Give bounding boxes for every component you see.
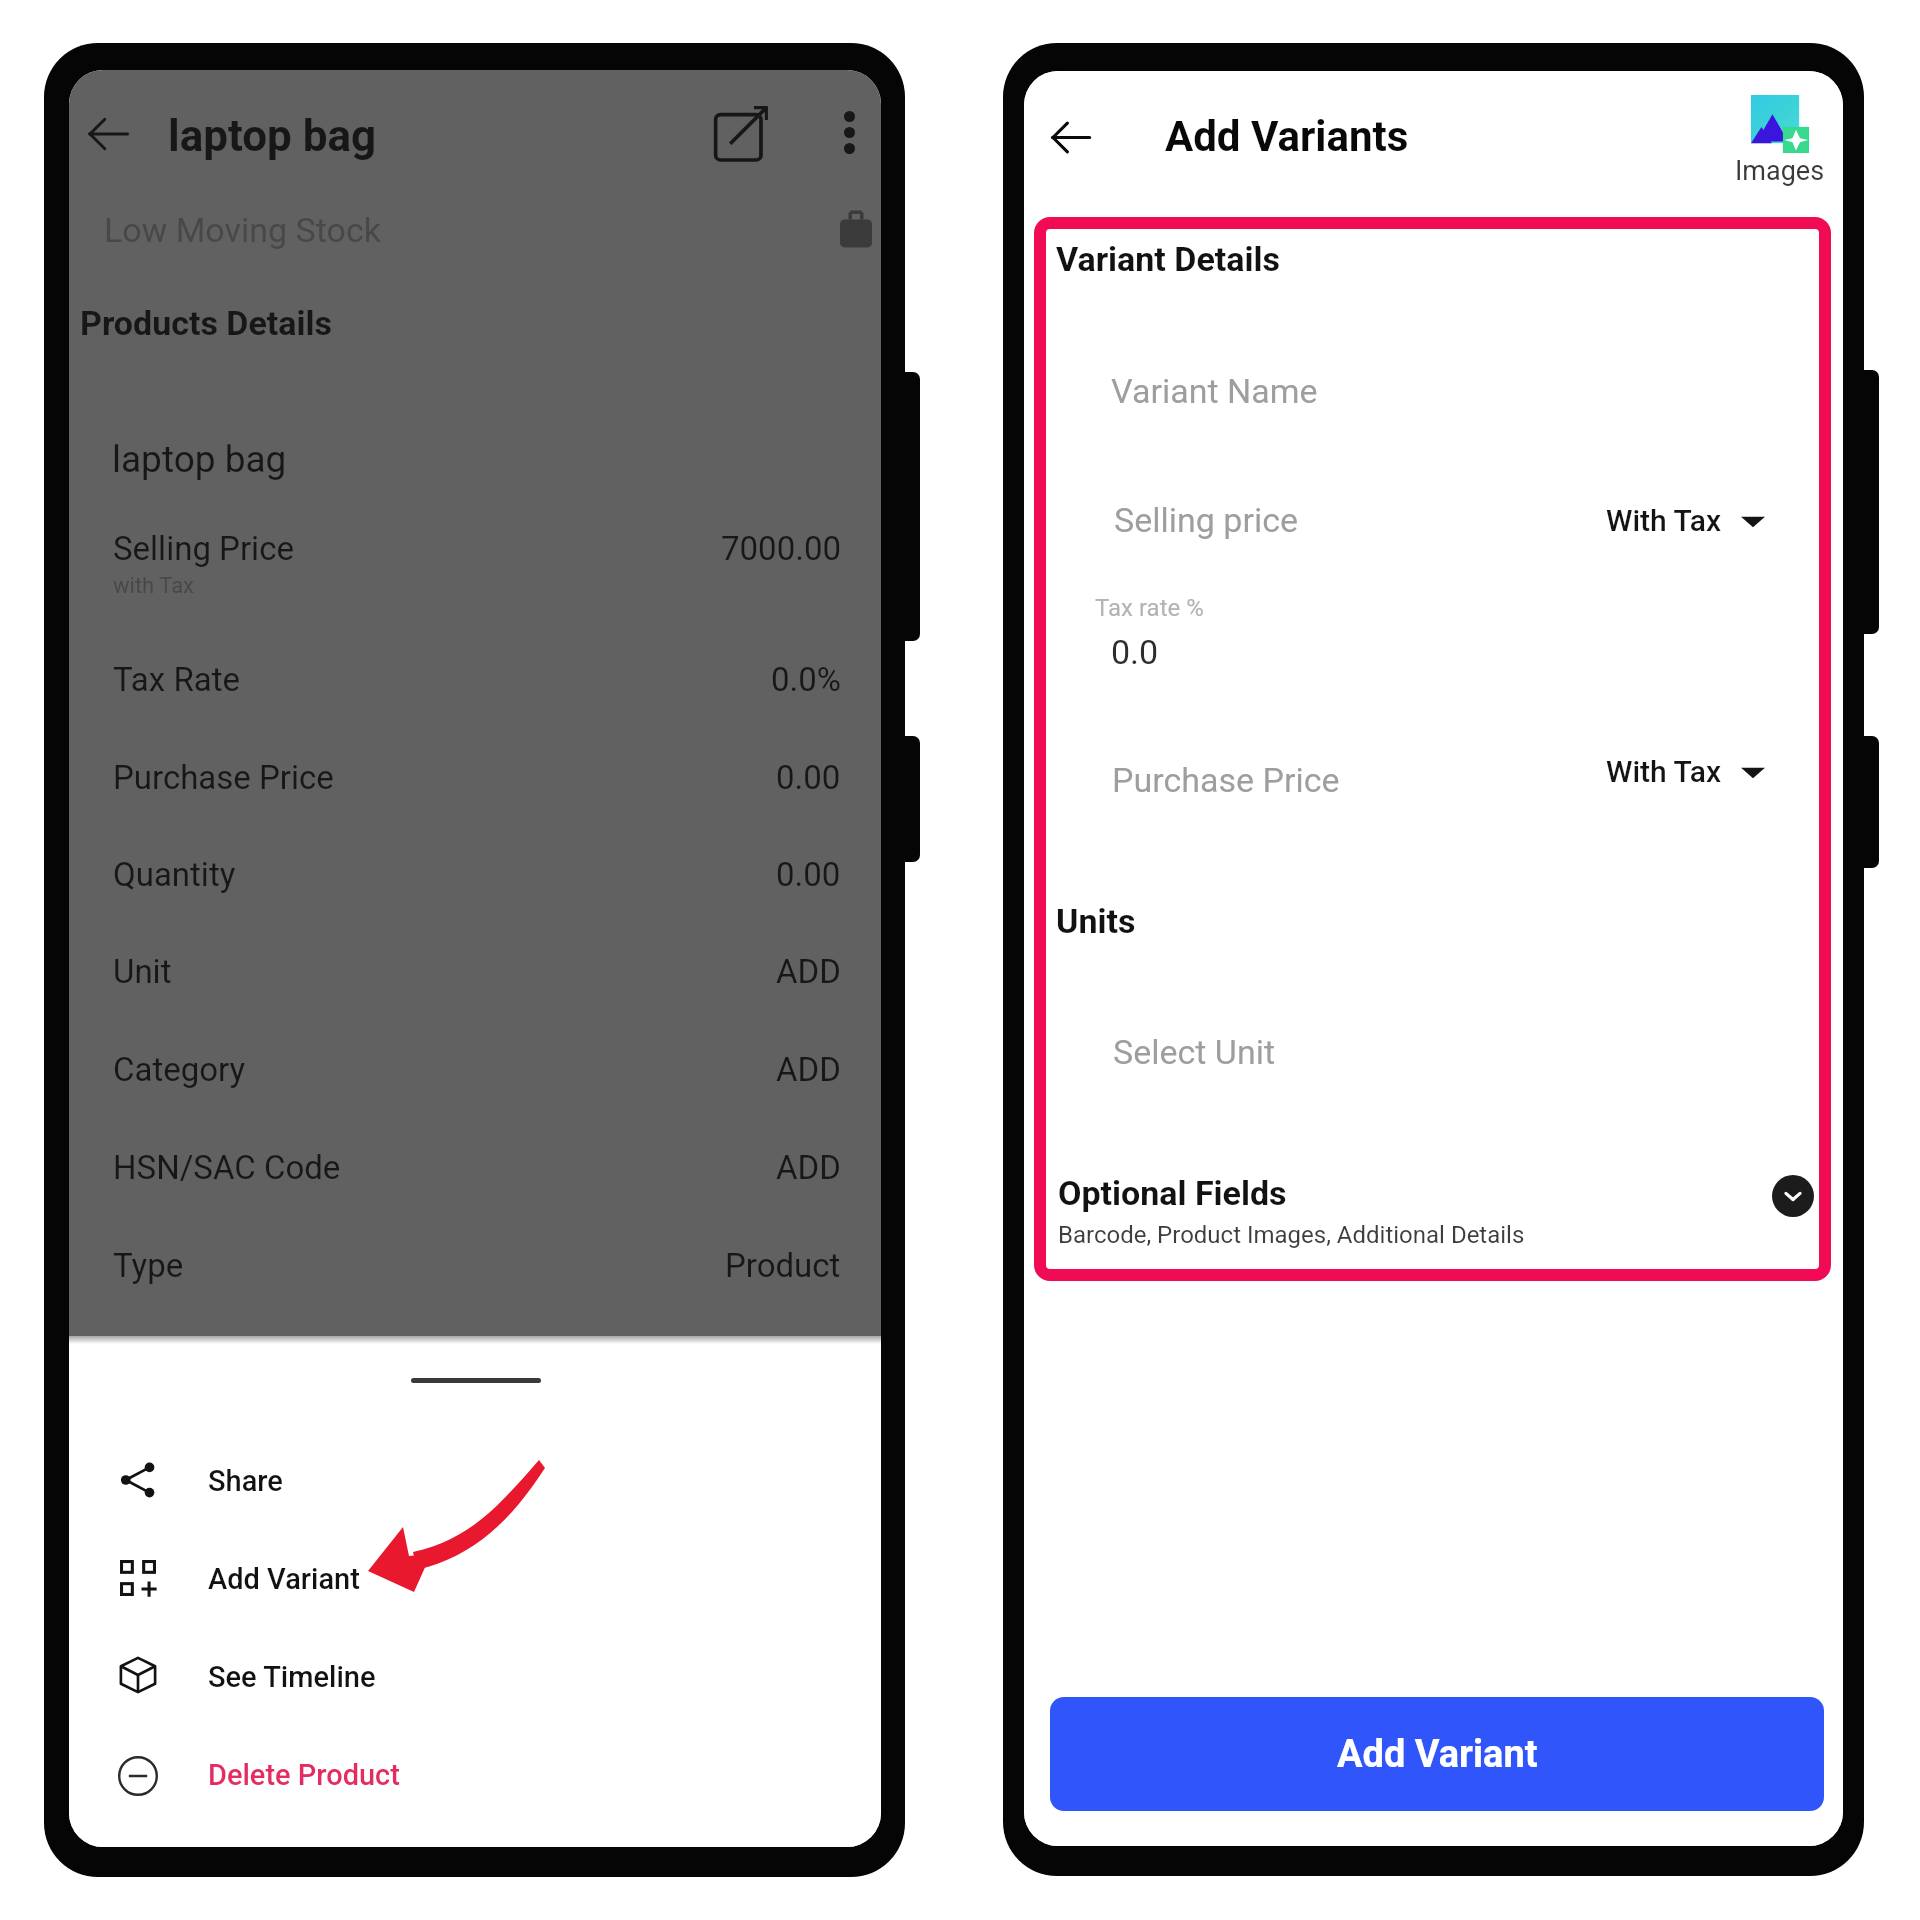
button[interactable]: Quantity xyxy=(69,826,881,922)
button[interactable]: With Tax xyxy=(1584,748,1804,800)
staticText: Share xyxy=(208,1464,283,1498)
staticText: ADD xyxy=(776,1050,841,1089)
staticText: with Tax xyxy=(113,573,195,599)
staticText: Unit xyxy=(113,952,172,991)
staticText: Delete Product xyxy=(208,1758,400,1792)
staticText: Selling price xyxy=(1114,500,1299,540)
button[interactable]: Back xyxy=(1046,113,1094,161)
staticText: laptop bag xyxy=(112,438,287,481)
staticText: Purchase Price xyxy=(113,758,334,797)
staticText: Optional Fields xyxy=(1058,1173,1287,1213)
staticText: Select Unit xyxy=(1113,1032,1276,1072)
button[interactable]: Purchase Price xyxy=(69,729,881,825)
button[interactable]: Optional Fields xyxy=(1034,1156,1831,1276)
button[interactable]: Selling Price xyxy=(69,500,881,596)
staticText: With Tax xyxy=(1606,503,1722,538)
staticText: See Timeline xyxy=(208,1660,376,1694)
staticText: Tax rate % xyxy=(1095,594,1204,622)
button[interactable]: Images xyxy=(1729,87,1835,191)
button[interactable]: See Timeline xyxy=(69,1629,881,1725)
staticText: Images xyxy=(1735,155,1825,187)
button[interactable]: Share xyxy=(69,1433,881,1529)
staticText: 0.00 xyxy=(776,855,841,894)
staticText: 0.00 xyxy=(776,758,841,797)
staticText: Units xyxy=(1056,901,1136,941)
staticText: Variant Details xyxy=(1056,239,1280,279)
staticText: 0.0% xyxy=(771,660,841,699)
button[interactable]: Tax Rate xyxy=(69,631,881,727)
staticText: Add Variant xyxy=(1337,1732,1538,1777)
staticText: Barcode, Product Images, Additional Deta… xyxy=(1058,1221,1525,1249)
staticText: Selling Price xyxy=(113,529,294,568)
staticText: ADD xyxy=(776,952,841,991)
button[interactable]: Back xyxy=(86,112,130,156)
button[interactable]: With Tax xyxy=(1584,497,1804,549)
button[interactable]: Unit xyxy=(69,923,881,1019)
button[interactable]: More options xyxy=(827,110,871,154)
button[interactable]: Category xyxy=(69,1021,881,1117)
staticText: Add Variant xyxy=(208,1562,360,1596)
staticText: 7000.00 xyxy=(721,529,841,568)
button[interactable]: Delete Product xyxy=(69,1727,881,1823)
staticText: Purchase Price xyxy=(1112,760,1340,800)
staticText: With Tax xyxy=(1606,754,1722,789)
staticText: HSN/SAC Code xyxy=(113,1148,341,1187)
staticText: Add Variants xyxy=(1165,112,1409,161)
staticText: Product xyxy=(725,1246,841,1285)
button[interactable]: Add Variant xyxy=(69,1531,881,1627)
button[interactable]: Type xyxy=(69,1217,881,1313)
staticText: ADD xyxy=(776,1148,841,1187)
staticText: laptop bag xyxy=(168,110,377,162)
staticText: Low Moving Stock xyxy=(104,210,381,250)
button[interactable]: Edit xyxy=(711,103,771,163)
staticText: Tax Rate xyxy=(113,660,240,699)
staticText: Type xyxy=(113,1246,184,1285)
staticText: Quantity xyxy=(113,855,236,894)
button[interactable]: Add Variant xyxy=(1050,1697,1824,1811)
staticText: Products Details xyxy=(80,303,332,343)
staticText: 0.0 xyxy=(1111,632,1159,672)
staticText: Variant Name xyxy=(1111,371,1318,411)
staticText: Category xyxy=(113,1050,246,1089)
button[interactable]: HSN/SAC Code xyxy=(69,1119,881,1215)
